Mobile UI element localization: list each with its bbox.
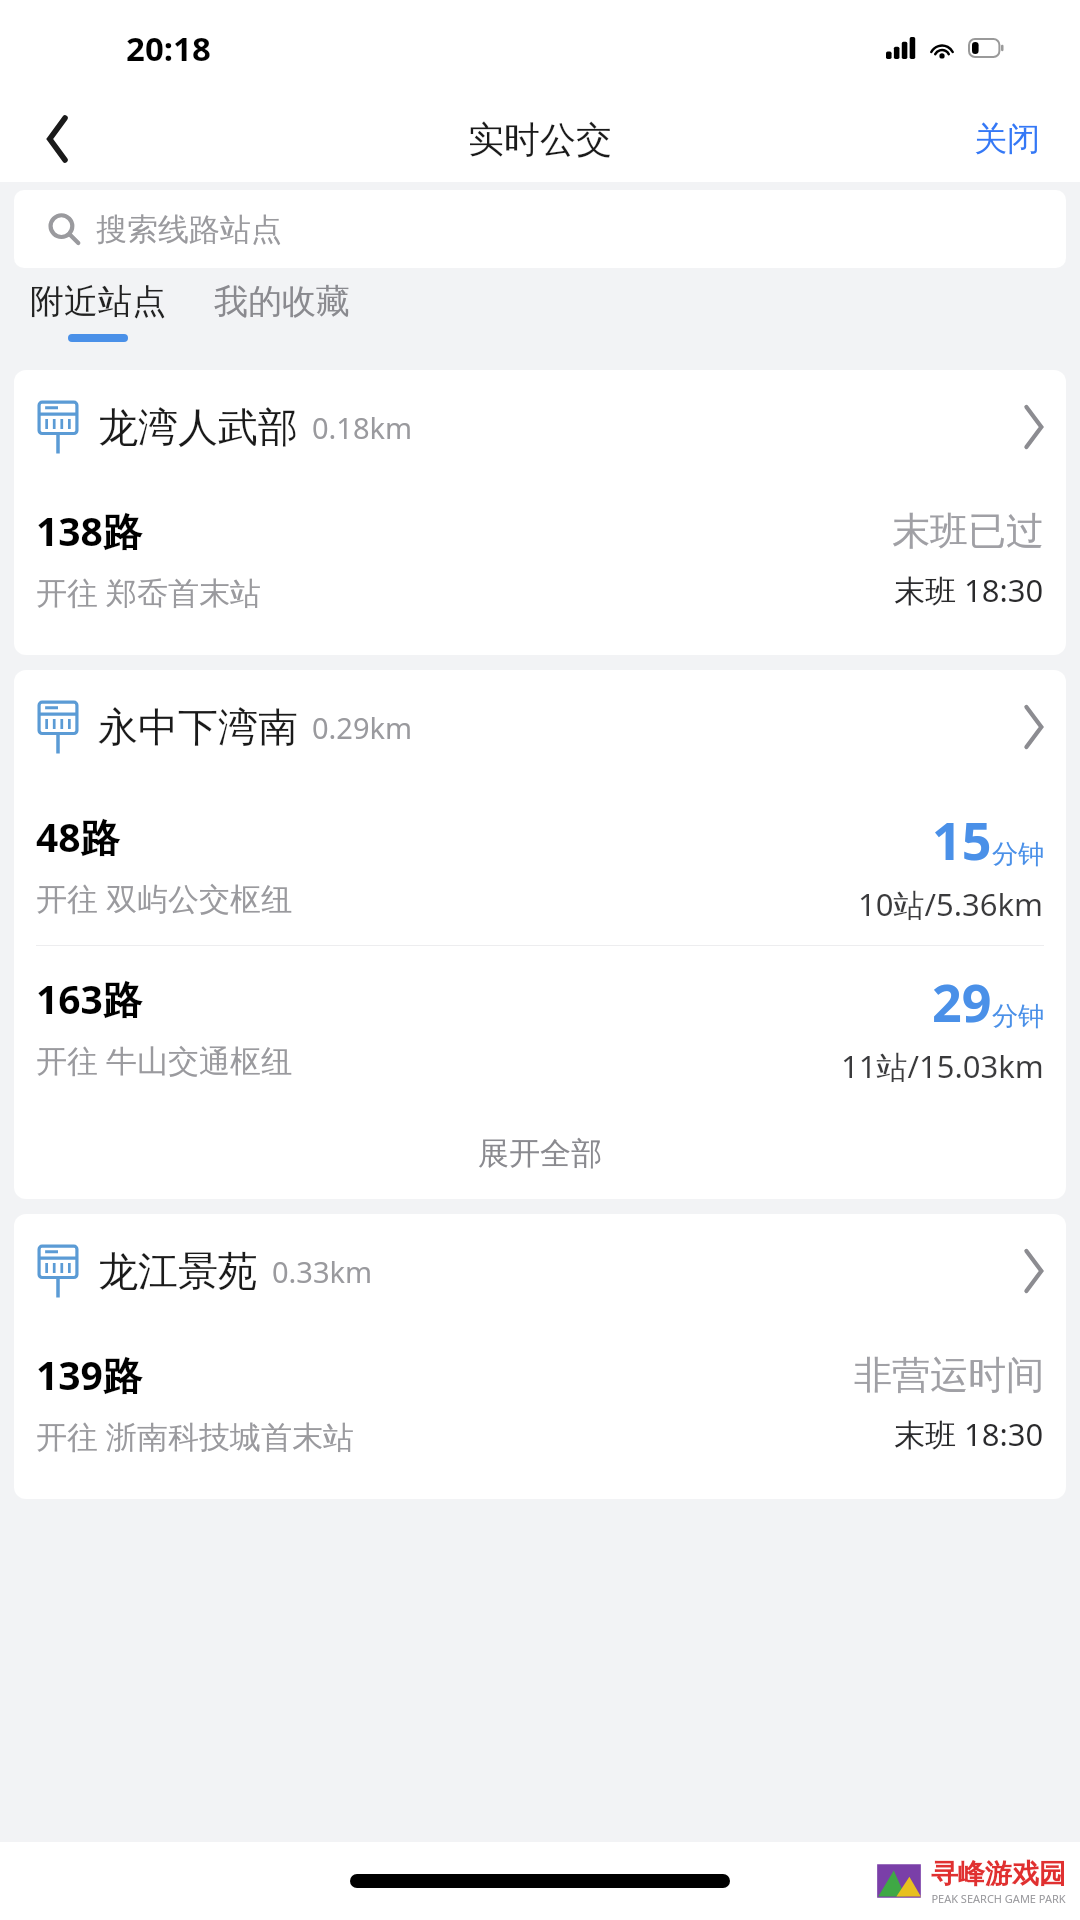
staticText: 0.29km bbox=[312, 708, 413, 747]
staticText: 分钟 bbox=[992, 838, 1044, 871]
staticText: 138路 bbox=[36, 504, 142, 557]
staticText: 实时公交 bbox=[468, 117, 612, 162]
button[interactable]: 139路 bbox=[14, 1328, 1066, 1477]
button[interactable]: 关闭 bbox=[968, 108, 1046, 170]
button[interactable]: 龙湾人武部 bbox=[14, 370, 1066, 484]
button[interactable]: 163路 bbox=[14, 946, 1066, 1107]
staticText: 非营运时间 bbox=[854, 1351, 1044, 1399]
staticText: 末班已过 bbox=[892, 507, 1044, 555]
staticText: 163路 bbox=[36, 972, 142, 1025]
staticText: 龙湾人武部 bbox=[98, 402, 298, 452]
staticText: 0.33km bbox=[272, 1252, 373, 1291]
staticText: 分钟 bbox=[992, 1000, 1044, 1033]
staticText: 开往 浙南科技城首末站 bbox=[36, 1415, 355, 1457]
staticText: 搜索线路站点 bbox=[96, 210, 282, 249]
button[interactable]: 搜索线路站点 bbox=[14, 190, 1066, 268]
staticText: 开往 郑岙首末站 bbox=[36, 571, 262, 613]
staticText: 永中下湾南 bbox=[98, 702, 298, 752]
staticText: 展开全部 bbox=[478, 1134, 602, 1173]
staticText: PEAK SEARCH GAME PARK bbox=[931, 1891, 1066, 1906]
staticText: 末班 18:30 bbox=[894, 569, 1044, 611]
staticText: 0.18km bbox=[312, 408, 413, 447]
staticText: 末班 18:30 bbox=[894, 1413, 1044, 1455]
staticText: 附近站点 bbox=[30, 280, 166, 323]
button[interactable]: 龙江景苑 bbox=[14, 1214, 1066, 1328]
staticText: 20:18 bbox=[126, 26, 211, 71]
staticText: 寻峰游戏园 bbox=[931, 1857, 1066, 1891]
staticText: 11站/15.03km bbox=[841, 1045, 1044, 1087]
staticText: 48路 bbox=[36, 810, 120, 863]
staticText: 139路 bbox=[36, 1348, 142, 1401]
button[interactable]: 48路 bbox=[14, 784, 1066, 945]
staticText: 关闭 bbox=[974, 118, 1040, 160]
staticText: 我的收藏 bbox=[214, 280, 350, 323]
button[interactable]: 展开全部 bbox=[14, 1107, 1066, 1199]
button[interactable]: 我的收藏 bbox=[206, 276, 358, 338]
staticText: 10站/5.36km bbox=[858, 883, 1044, 925]
staticText: 29 bbox=[932, 966, 992, 1037]
button[interactable]: Back bbox=[22, 103, 94, 175]
staticText: 15 bbox=[932, 804, 992, 875]
button[interactable]: 附近站点 bbox=[22, 276, 174, 346]
button[interactable]: 138路 bbox=[14, 484, 1066, 633]
button[interactable]: 永中下湾南 bbox=[14, 670, 1066, 784]
staticText: 开往 双屿公交枢纽 bbox=[36, 877, 293, 919]
staticText: 开往 牛山交通枢纽 bbox=[36, 1039, 293, 1081]
staticText: 龙江景苑 bbox=[98, 1246, 258, 1296]
